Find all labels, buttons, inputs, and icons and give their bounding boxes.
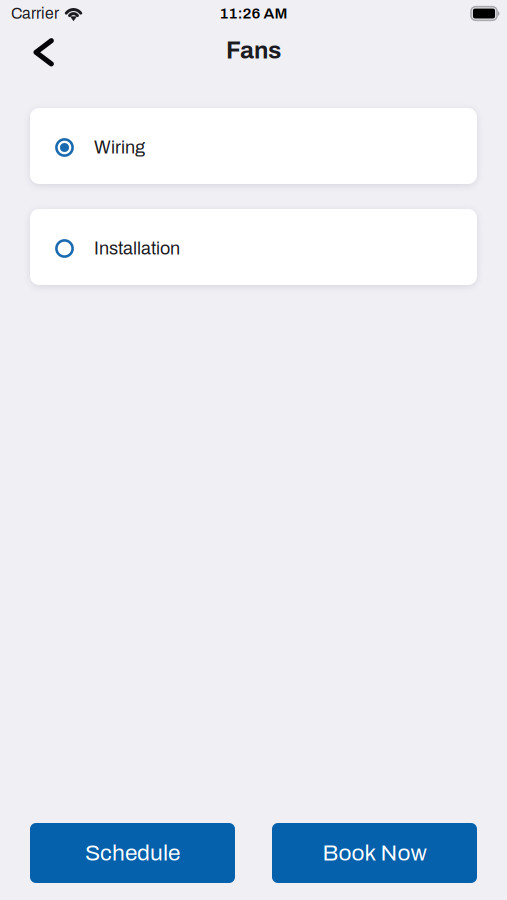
- button[interactable]: Wiring: [30, 108, 477, 184]
- staticText: 11:26 AM: [219, 5, 287, 22]
- button[interactable]: Book Now: [272, 823, 477, 883]
- staticText: Fans: [226, 37, 281, 63]
- button[interactable]: Back: [0, 27, 74, 74]
- staticText: Installation: [94, 239, 180, 258]
- staticText: Wiring: [94, 138, 145, 157]
- staticText: Schedule: [85, 841, 180, 865]
- staticText: Carrier: [11, 5, 59, 22]
- staticText: Book Now: [322, 841, 426, 865]
- button[interactable]: Installation: [30, 209, 477, 285]
- button[interactable]: Schedule: [30, 823, 235, 883]
